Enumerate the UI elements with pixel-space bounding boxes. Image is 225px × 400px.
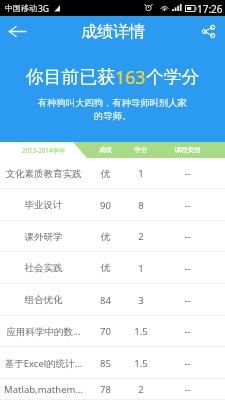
button[interactable]: 应用科学中的数… bbox=[0, 316, 225, 347]
staticText: 课程类别 bbox=[158, 146, 217, 154]
staticText: -- bbox=[158, 230, 217, 243]
staticText: 1.5 bbox=[124, 325, 158, 338]
staticText: 90 bbox=[87, 199, 124, 212]
button[interactable]: 毕业设计 bbox=[0, 189, 225, 221]
staticText: 2013-2014学年 bbox=[0, 146, 87, 155]
staticText: 84 bbox=[87, 294, 124, 307]
staticText: 2 bbox=[124, 383, 158, 396]
staticText: 优 bbox=[87, 168, 124, 180]
button[interactable]: 组合优化 bbox=[0, 284, 225, 316]
staticText: -- bbox=[158, 325, 217, 338]
staticText: 优 bbox=[87, 231, 124, 243]
staticText: 85 bbox=[87, 357, 124, 370]
staticText: 应用科学中的数… bbox=[0, 325, 87, 338]
staticText: Matlab,mathem… bbox=[0, 383, 87, 396]
staticText: 70 bbox=[87, 325, 124, 338]
button[interactable]: 社会实践 bbox=[0, 252, 225, 284]
staticText: 个学分 bbox=[146, 66, 200, 88]
staticText: 基于Excel的统计… bbox=[0, 357, 87, 370]
staticText: 1 bbox=[124, 262, 158, 275]
staticText: 成绩详情 bbox=[81, 22, 145, 42]
staticText: 有种狗叫大四狗，有种导师叫别人家 bbox=[38, 97, 187, 109]
staticText: 8 bbox=[124, 199, 158, 212]
button[interactable]: Matlab,mathem… bbox=[0, 379, 225, 400]
staticText: -- bbox=[158, 167, 217, 180]
staticText: 课外研学 bbox=[0, 231, 87, 243]
staticText: 成绩 bbox=[87, 146, 124, 154]
staticText: 文化素质教育实践 bbox=[0, 168, 87, 180]
staticText: 你目前已获 bbox=[26, 66, 115, 88]
staticText: -- bbox=[158, 383, 217, 396]
staticText: 3G bbox=[38, 3, 50, 15]
staticText: 学分 bbox=[124, 146, 158, 154]
staticText: -- bbox=[158, 357, 217, 370]
staticText: 1.5 bbox=[124, 357, 158, 370]
staticText: 2 bbox=[124, 230, 158, 243]
button[interactable]: 文化素质教育实践 bbox=[0, 158, 225, 189]
staticText: -- bbox=[158, 294, 217, 307]
staticText: 毕业设计 bbox=[0, 199, 87, 211]
staticText: 组合优化 bbox=[0, 294, 87, 306]
staticText: 1 bbox=[124, 167, 158, 180]
button[interactable]: 课外研学 bbox=[0, 221, 225, 252]
staticText: 78 bbox=[87, 383, 124, 396]
button[interactable]: Back bbox=[0, 16, 34, 47]
button[interactable]: Share bbox=[195, 16, 221, 47]
staticText: 的导师。 bbox=[94, 110, 132, 122]
staticText: -- bbox=[158, 199, 217, 212]
staticText: 17:26 bbox=[197, 2, 223, 16]
staticText: 3 bbox=[124, 294, 158, 307]
staticText: 中国移动 bbox=[5, 3, 37, 13]
staticText: 优 bbox=[87, 262, 124, 274]
staticText: 163 bbox=[115, 65, 146, 89]
staticText: 社会实践 bbox=[0, 262, 87, 274]
staticText: -- bbox=[158, 262, 217, 275]
button[interactable]: 基于Excel的统计… bbox=[0, 347, 225, 379]
